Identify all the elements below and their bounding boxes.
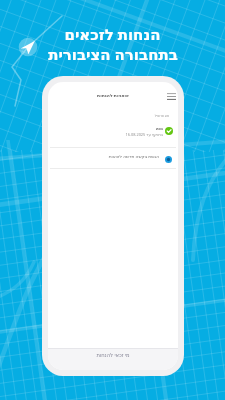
button[interactable]: הגשת בקשה חדשה לזכאות: [48, 147, 178, 168]
staticText: הנחות לזכאים: [64, 24, 161, 44]
staticText: נכה: [155, 126, 163, 131]
staticText: בתחבורה הציבורית: [48, 44, 178, 64]
staticText: הגשת בקשה חדשה לזכאות: [108, 153, 159, 159]
staticText: מי זכאי להנחות: [96, 351, 130, 358]
staticText: בתוקף עד 16.08.2025: [125, 132, 163, 137]
staticText: סוג פרופיל: [154, 114, 169, 118]
button[interactable]: Menu: [167, 93, 176, 100]
staticText: זכאויות להנחות: [97, 92, 129, 98]
button[interactable]: מי זכאי להנחות: [48, 348, 178, 370]
button[interactable]: סוג פרופיל: [48, 100, 178, 147]
